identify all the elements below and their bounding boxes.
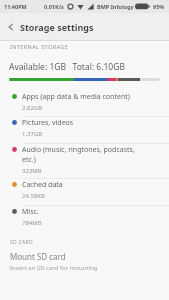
button[interactable]: Misc. [0, 207, 169, 227]
staticText: INTERNAL STORAGE [10, 43, 69, 50]
button[interactable]: Cached data [0, 180, 169, 200]
staticText: Misc. [22, 207, 39, 217]
staticText: 95% [153, 3, 165, 10]
button[interactable]: Audio (music, ringtones, podcasts, [0, 145, 169, 175]
staticText: etc.) [22, 155, 36, 165]
staticText: Available: 1GB Total: 6.10GB [9, 61, 125, 73]
staticText: 323MB [22, 167, 42, 175]
staticText: Cached data [22, 180, 63, 190]
staticText: Pictures, videos [22, 118, 74, 128]
staticText: Mount SD card [10, 251, 66, 262]
staticText: 0.01K/s [44, 3, 64, 10]
staticText: 11:40PM [4, 3, 27, 10]
staticText: 784MB [22, 219, 42, 227]
button[interactable]: Storage settings [0, 13, 169, 40]
staticText: 2.62GB [22, 104, 43, 112]
staticText: 1.37GB [22, 130, 43, 138]
staticText: 24.58KB [22, 192, 45, 200]
staticText: Storage settings [20, 21, 94, 33]
button[interactable]: Apps (app data & media content) [0, 92, 169, 112]
staticText: Apps (app data & media content) [22, 92, 130, 102]
staticText: Insert an SD card for mounting [10, 264, 98, 272]
button[interactable]: Pictures, videos [0, 118, 169, 138]
staticText: BMP Infology [97, 3, 134, 10]
button[interactable]: Mount SD card [0, 251, 169, 272]
staticText: Audio (music, ringtones, podcasts, [22, 145, 135, 155]
staticText: SD CARD [10, 239, 33, 246]
